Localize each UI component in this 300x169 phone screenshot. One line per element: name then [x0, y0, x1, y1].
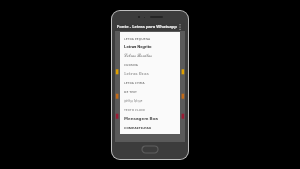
button[interactable]: 𝔤𝔬𝔱𝔦𝔠𝔞 𝔩𝔢𝔱𝔯𝔞𝔰 — [124, 96, 176, 105]
button[interactable]: 𝗠𝗲𝗻𝘀𝗮𝗴𝗲𝗺 𝗕𝗼𝗮 — [124, 114, 176, 123]
staticText: ᴅᴇ ᴛᴇxᴛ — [124, 89, 137, 94]
button[interactable]: ᴛᴇxᴛᴏ ғʟᴜɪᴅ — [124, 105, 176, 114]
staticText: 𝔤𝔬𝔱𝔦𝔠𝔞 𝔩𝔢𝔱𝔯𝔞𝔰 — [124, 98, 143, 103]
staticText: ʟᴇᴛʀᴀ ᴄʜᴇɪᴀ — [124, 80, 145, 85]
button[interactable]: Fonte - Letras para Whatsapp — [115, 23, 185, 31]
button[interactable]: ᴄᴏᴍᴘᴀʀᴛɪʟʜᴀʀ — [124, 123, 176, 132]
staticText: ᴛᴇxᴛᴏ ғʟᴜɪᴅ — [124, 107, 145, 112]
button[interactable]: 𝕃𝕖𝕥𝕣𝕒𝕤 𝕆𝕔𝕒𝕤 — [124, 69, 176, 78]
staticText: 𝓛𝓮𝓽𝓻𝓪𝓼 𝓑𝓸𝓷𝓲𝓽𝓪𝓼 — [124, 53, 152, 58]
staticText: ᴄᴏᴍᴘᴀʀᴛɪʟʜᴀʀ — [124, 125, 152, 130]
staticText: ᴄᴜʀsɪᴠᴀ — [124, 62, 138, 67]
staticText: ʟᴇᴛʀᴀ ᴘᴇǫᴜᴇɴᴀ — [124, 36, 151, 41]
button[interactable]: Home — [142, 146, 158, 153]
staticText: 𝕃𝕖𝕥𝕣𝕒𝕤 𝕆𝕔𝕒𝕤 — [124, 71, 149, 76]
staticText: 𝗠𝗲𝗻𝘀𝗮𝗴𝗲𝗺 𝗕𝗼𝗮 — [124, 116, 158, 121]
button[interactable]: ᴅᴇ ᴛᴇxᴛ — [124, 87, 176, 96]
staticText: Fonte - Letras para Whatsapp — [117, 24, 177, 30]
staticText: 𝐋𝐞𝐭𝐫𝐚𝐬 𝐍𝐞𝐠𝐫𝐢𝐭𝐨 — [124, 44, 152, 49]
button[interactable]: ʟᴇᴛʀᴀ ᴄʜᴇɪᴀ — [124, 78, 176, 87]
button[interactable]: ᴄᴜʀsɪᴠᴀ — [124, 60, 176, 69]
button[interactable]: More options — [177, 24, 183, 30]
button[interactable]: 𝓛𝓮𝓽𝓻𝓪𝓼 𝓑𝓸𝓷𝓲𝓽𝓪𝓼 — [124, 51, 176, 60]
button[interactable]: ʟᴇᴛʀᴀ ᴘᴇǫᴜᴇɴᴀ — [124, 34, 176, 42]
button[interactable]: 𝐋𝐞𝐭𝐫𝐚𝐬 𝐍𝐞𝐠𝐫𝐢𝐭𝐨 — [124, 42, 176, 51]
